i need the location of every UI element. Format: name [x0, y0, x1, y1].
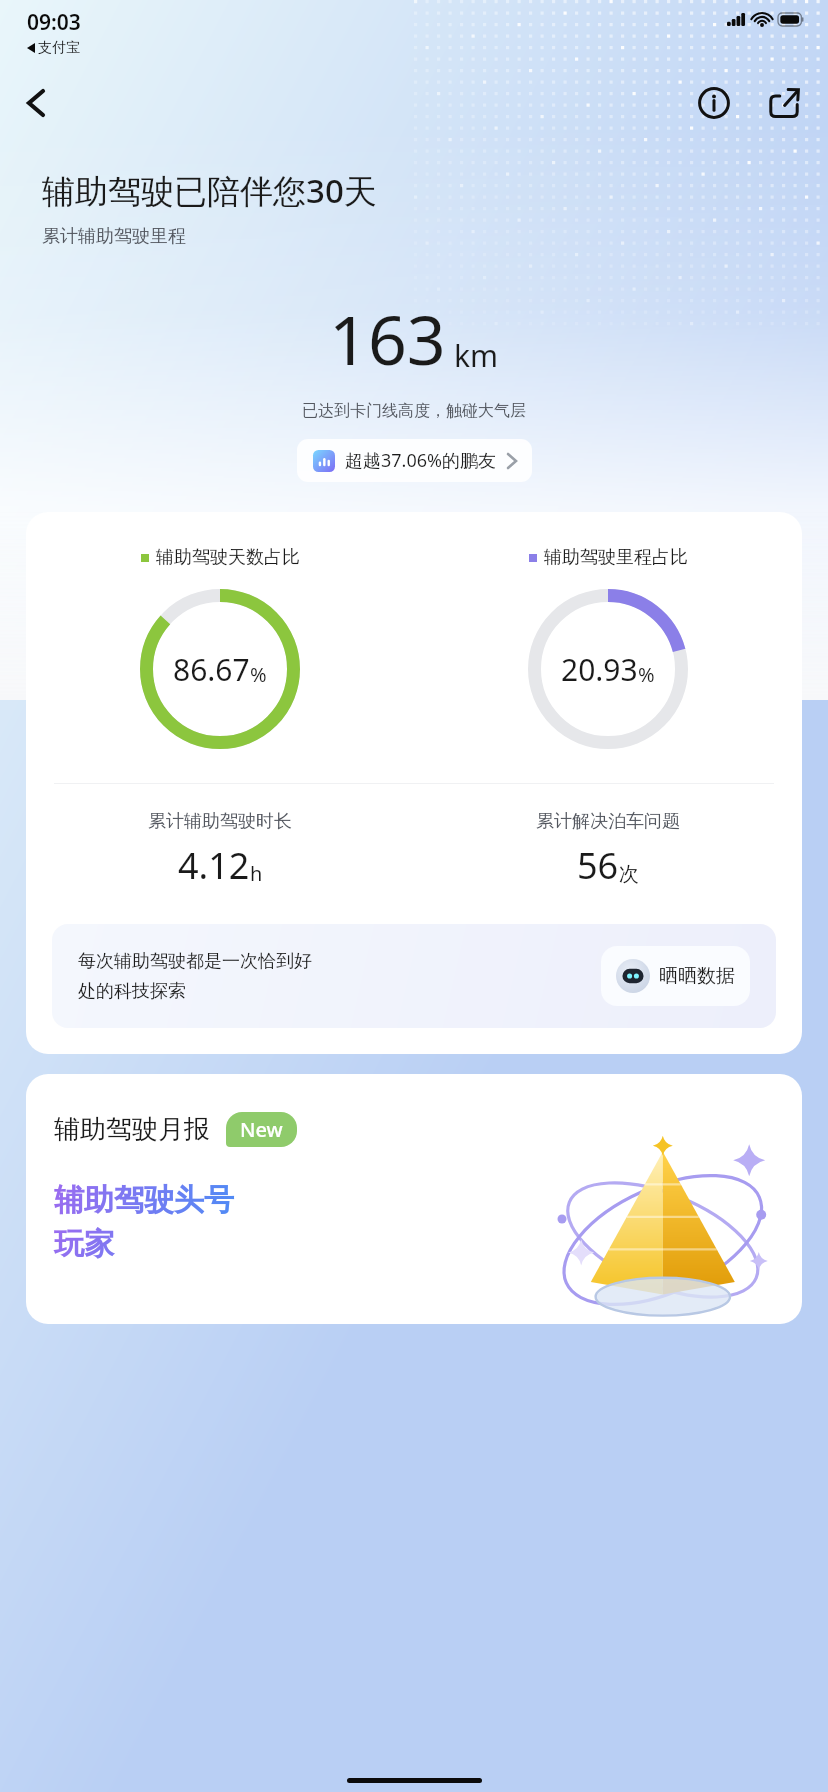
staticText: 163	[329, 292, 446, 385]
staticText: 09:03	[27, 8, 81, 37]
staticText: %	[250, 661, 267, 688]
staticText: 支付宝	[38, 39, 80, 57]
staticText: h	[250, 860, 263, 887]
staticText: 86.67	[173, 649, 250, 690]
staticText: 辅助驾驶月报	[54, 1113, 210, 1146]
staticText: 4.12	[178, 841, 250, 890]
staticText: 晒晒数据	[659, 964, 735, 988]
button[interactable]: 辅助驾驶月报	[26, 1074, 802, 1324]
button[interactable]: 超越37.06%的鹏友	[297, 439, 532, 482]
staticText: 辅助驾驶已陪伴您30天	[42, 168, 377, 213]
button[interactable]: 晒晒数据	[601, 946, 750, 1006]
staticText: %	[638, 661, 655, 688]
staticText: 已达到卡门线高度，触碰大气层	[0, 401, 828, 421]
staticText: 超越37.06%的鹏友	[345, 448, 496, 473]
staticText: 每次辅助驾驶都是一次恰到好 处的科技探索	[78, 950, 589, 1003]
staticText: 累计辅助驾驶里程	[42, 225, 186, 248]
button[interactable]: Info	[688, 77, 740, 129]
button[interactable]: Share	[758, 77, 810, 129]
button[interactable]: Back	[12, 79, 60, 127]
staticText: 辅助驾驶里程占比	[544, 546, 688, 569]
staticText: 辅助驾驶天数占比	[156, 546, 300, 569]
staticText: 玩家	[54, 1225, 114, 1263]
staticText: km	[454, 335, 499, 376]
staticText: 辅助驾驶头号	[54, 1181, 234, 1219]
staticText: 次	[619, 862, 639, 887]
staticText: New	[240, 1116, 283, 1143]
staticText: 累计解决泊车问题	[536, 810, 680, 833]
staticText: 20.93	[561, 649, 638, 690]
staticText: 56	[577, 841, 619, 890]
staticText: 累计辅助驾驶时长	[148, 810, 292, 833]
